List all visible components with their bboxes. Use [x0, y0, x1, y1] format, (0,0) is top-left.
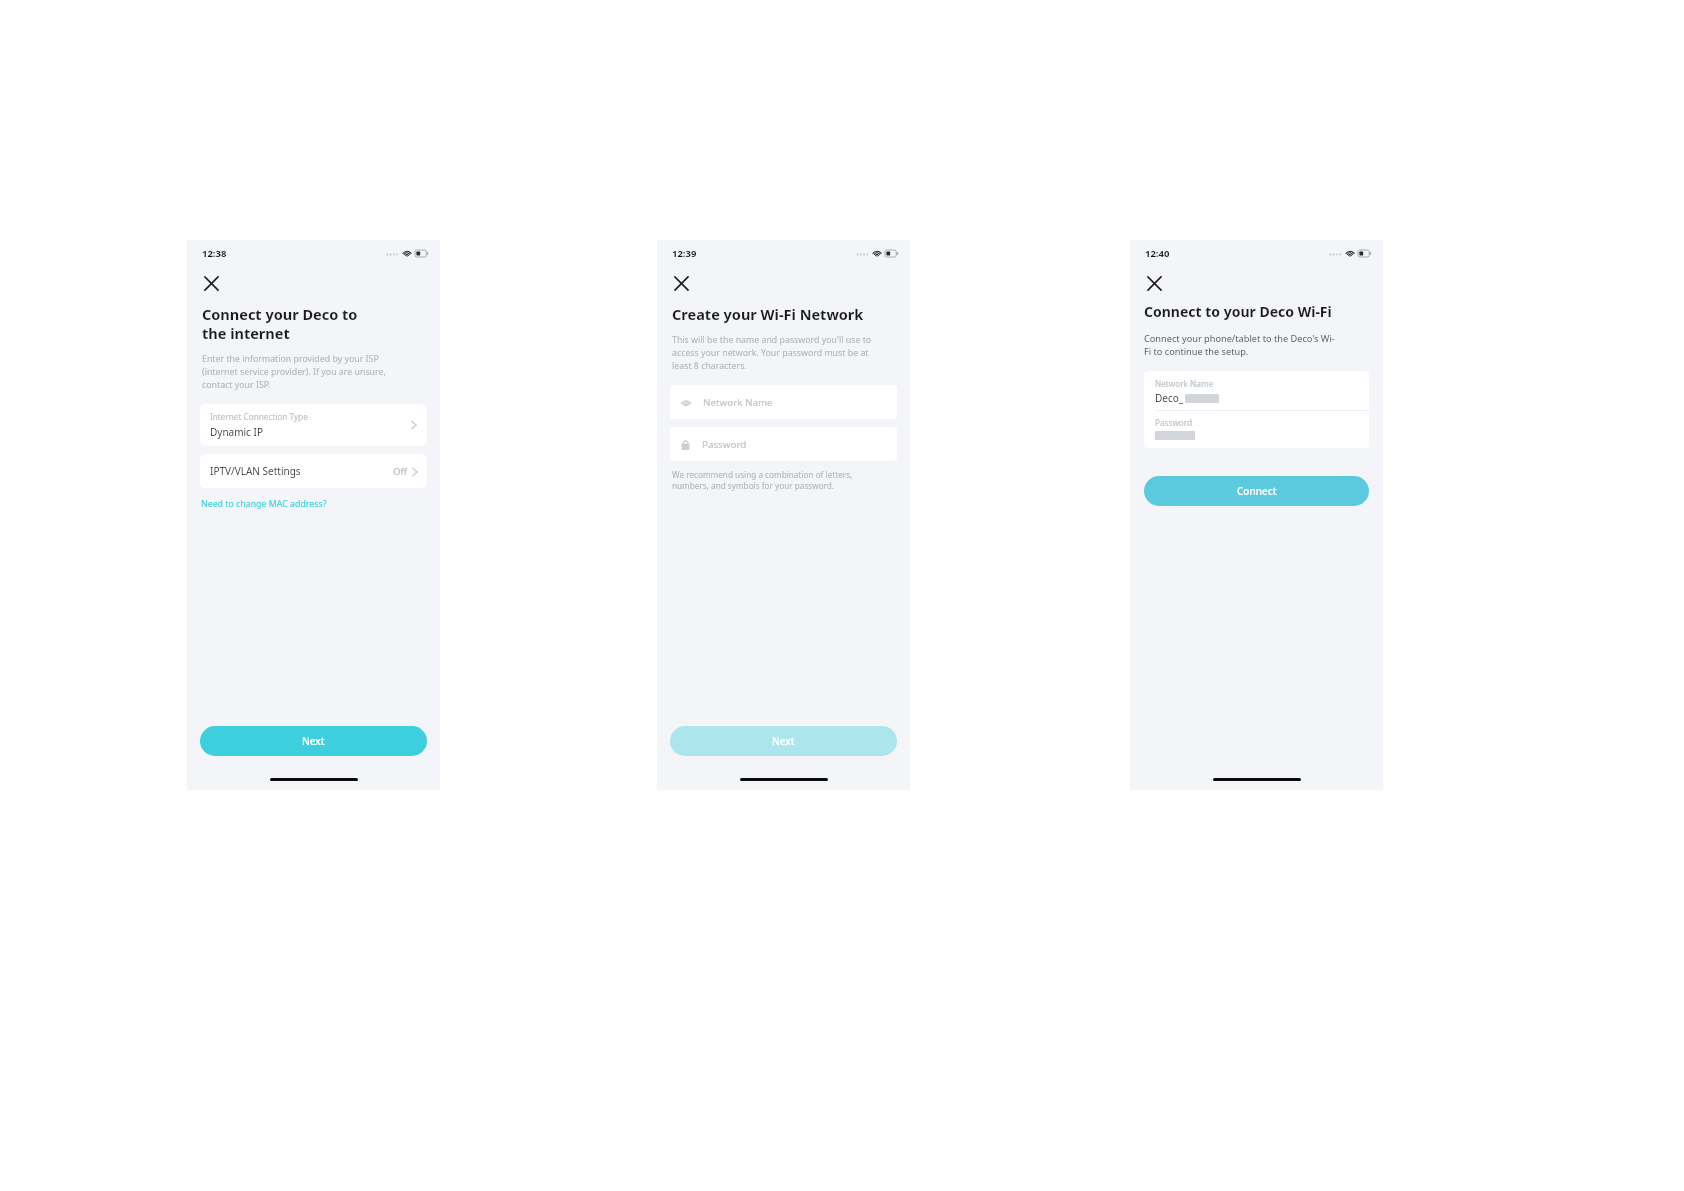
- button[interactable]: Network Name: [670, 385, 897, 419]
- staticText: Next: [772, 734, 795, 748]
- staticText: IPTV/VLAN Settings: [210, 464, 301, 478]
- staticText: Password: [1155, 417, 1193, 428]
- staticText: Network Name: [703, 396, 773, 409]
- staticText: Create your Wi-Fi Network: [672, 304, 864, 324]
- staticText: This will be the name and password you'l…: [672, 334, 872, 371]
- staticText: Connect your Deco to the internet: [202, 304, 358, 343]
- staticText: 12:38: [202, 247, 227, 260]
- staticText: Connect to your Deco Wi-Fi: [1144, 302, 1332, 321]
- button[interactable]: Close: [198, 270, 224, 296]
- staticText: Need to change MAC address?: [201, 498, 327, 510]
- staticText: Network Name: [1155, 378, 1214, 389]
- staticText: Next: [302, 734, 325, 748]
- staticText: Enter the information provided by your I…: [202, 353, 386, 390]
- staticText: 12:39: [672, 247, 697, 260]
- button[interactable]: Close: [1141, 270, 1167, 296]
- staticText: Dynamic IP: [210, 425, 263, 439]
- button[interactable]: Password: [670, 427, 897, 461]
- staticText: Off: [393, 465, 407, 478]
- button[interactable]: Next: [670, 726, 897, 756]
- button[interactable]: Need to change MAC address?: [201, 498, 327, 510]
- button[interactable]: Next: [200, 726, 427, 756]
- button[interactable]: Close: [668, 270, 694, 296]
- staticText: Connect your phone/tablet to the Deco's …: [1144, 332, 1335, 358]
- button[interactable]: Connect: [1144, 476, 1369, 506]
- staticText: 12:40: [1145, 247, 1170, 260]
- staticText: Internet Connection Type: [210, 411, 308, 422]
- staticText: Deco_: [1155, 391, 1184, 405]
- staticText: Connect: [1237, 484, 1277, 498]
- button[interactable]: Internet Connection Type: [200, 404, 427, 446]
- staticText: Password: [702, 438, 747, 451]
- staticText: We recommend using a combination of lett…: [672, 469, 853, 491]
- button[interactable]: IPTV/VLAN Settings: [200, 454, 427, 488]
